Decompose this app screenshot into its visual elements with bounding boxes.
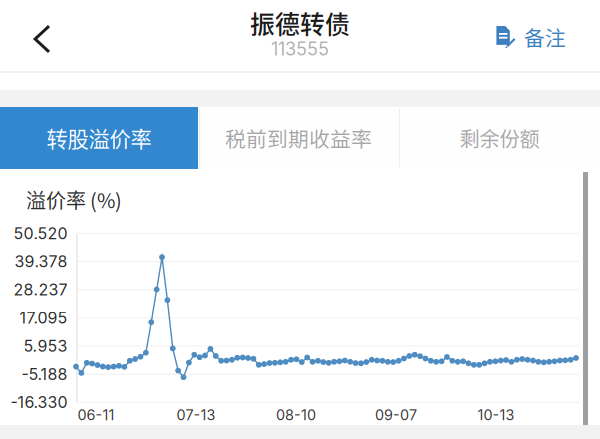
staticText: 39.378	[14, 252, 67, 271]
staticText: 5.953	[23, 336, 67, 356]
staticText: 08-10	[276, 406, 316, 424]
staticText: 50.520	[13, 224, 67, 243]
button[interactable]: 备注	[482, 11, 580, 63]
staticText: 113555	[271, 38, 329, 60]
staticText: 振德转债	[250, 5, 350, 41]
staticText: 10-13	[477, 406, 514, 424]
staticText: 06-11	[77, 406, 114, 424]
button[interactable]: 转股溢价率	[0, 107, 198, 169]
staticText: -16.330	[10, 393, 67, 412]
button[interactable]: 剩余份额	[399, 107, 600, 169]
staticText: 17.095	[19, 308, 67, 327]
staticText: 07-13	[176, 406, 215, 424]
staticText: 09-07	[375, 406, 417, 424]
button[interactable]: 税前到期收益率	[198, 107, 399, 169]
button[interactable]: Back	[14, 9, 70, 69]
staticText: 备注	[524, 22, 566, 52]
staticText: -5.188	[21, 364, 67, 384]
staticText: 转股溢价率	[46, 123, 151, 153]
staticText: 28.237	[13, 280, 67, 299]
staticText: 剩余份额	[459, 123, 539, 153]
staticText: 税前到期收益率	[225, 123, 372, 153]
staticText: 溢价率 (%)	[26, 185, 122, 214]
